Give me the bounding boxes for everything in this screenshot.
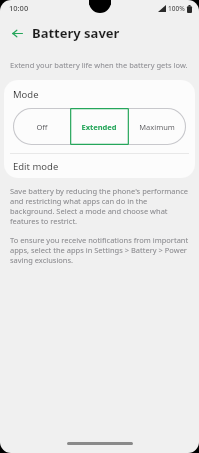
staticText: Mode bbox=[13, 88, 39, 101]
staticText: 100% bbox=[168, 4, 185, 13]
button[interactable]: Extended bbox=[70, 108, 128, 145]
staticText: Edit mode bbox=[13, 160, 59, 173]
staticText: Extend your battery life when the batter… bbox=[10, 60, 188, 70]
button[interactable]: Maximum bbox=[128, 108, 186, 145]
button[interactable]: Edit mode bbox=[4, 154, 195, 178]
staticText: 10:00 bbox=[9, 3, 29, 13]
staticText: To ensure you receive notifications from… bbox=[10, 235, 189, 265]
staticText: Extended bbox=[81, 122, 117, 132]
staticText: Off bbox=[36, 122, 48, 132]
staticText: Battery saver bbox=[32, 24, 120, 42]
button[interactable]: Off bbox=[13, 108, 70, 145]
staticText: Save battery by reducing the phone's per… bbox=[10, 186, 189, 226]
staticText: Maximum bbox=[139, 122, 175, 132]
button[interactable]: Back bbox=[6, 22, 28, 44]
